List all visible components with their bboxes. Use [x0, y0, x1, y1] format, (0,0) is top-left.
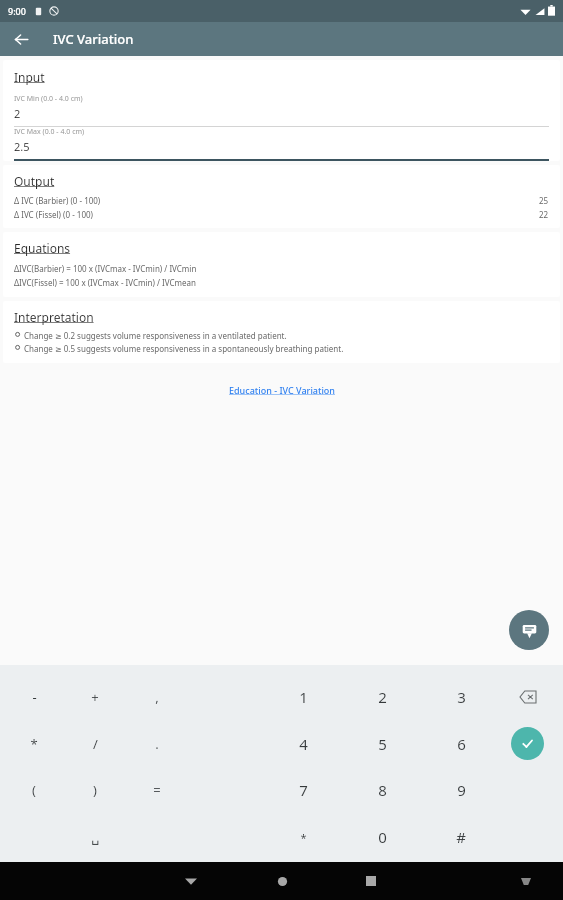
staticText: ΔIVC(Barbier) = 100 x (IVCmax - IVCmin) … [14, 263, 197, 274]
button[interactable]: ( [12, 774, 56, 806]
button[interactable]: Δ IVC (Fissel) (0 - 100) [3, 209, 560, 220]
staticText: IVC Max (0.0 - 4.0 cm) [14, 127, 85, 137]
button[interactable]: 6 [439, 728, 483, 760]
button[interactable]: 1 [281, 681, 325, 713]
button[interactable]: 9 [439, 774, 483, 806]
staticText: ΔIVC(Fissel) = 100 x (IVCmax - IVCmin) /… [14, 277, 196, 288]
button[interactable]: 3 [439, 681, 483, 713]
button[interactable]: / [73, 728, 117, 760]
staticText: IVC Variation [53, 30, 134, 48]
staticText: 8 [378, 780, 387, 800]
staticText: Output [14, 173, 55, 189]
button[interactable]: + [73, 681, 117, 713]
staticText: + [91, 688, 99, 706]
button[interactable]: * [12, 728, 56, 760]
button[interactable]: IVC Max (0.0 - 4.0 cm) [3, 127, 560, 161]
staticText: Equations [14, 240, 71, 256]
button[interactable]: , [135, 681, 179, 713]
button[interactable]: Done [511, 727, 544, 760]
staticText: 7 [299, 780, 308, 800]
staticText: ( [32, 781, 36, 799]
button[interactable]: . [135, 728, 179, 760]
button[interactable]: 7 [281, 774, 325, 806]
button[interactable]: 0 [360, 821, 404, 853]
staticText: - [32, 688, 37, 706]
staticText: 0 [378, 827, 387, 847]
button[interactable]: ) [73, 774, 117, 806]
button[interactable]: Send feedback [509, 610, 549, 650]
staticText: 2 [14, 106, 21, 121]
staticText: Change ≥ 0.2 suggests volume responsiven… [24, 330, 287, 341]
button[interactable]: Recent apps [356, 866, 386, 896]
staticText: ␣ [91, 830, 100, 845]
staticText: 2.5 [14, 139, 30, 154]
button[interactable]: Hide keyboard [513, 868, 539, 894]
button[interactable]: 8 [360, 774, 404, 806]
staticText: Interpretation [14, 309, 94, 325]
button[interactable]: 4 [281, 728, 325, 760]
staticText: 9 [457, 780, 466, 800]
staticText: , [155, 688, 159, 706]
staticText: / [93, 735, 98, 753]
button[interactable]: ␣ [73, 821, 117, 853]
staticText: ) [93, 781, 97, 799]
staticText: 4 [299, 734, 308, 754]
button[interactable]: Education - IVC Variation [0, 380, 563, 400]
staticText: Δ IVC (Fissel) (0 - 100) [14, 209, 93, 220]
staticText: Δ IVC (Barbier) (0 - 100) [14, 195, 101, 206]
button[interactable]: Backspace [508, 685, 548, 709]
button[interactable]: = [135, 774, 179, 806]
staticText: 3 [457, 687, 466, 707]
button[interactable]: 2 [360, 681, 404, 713]
staticText: 25 [539, 195, 549, 206]
button[interactable]: 5 [360, 728, 404, 760]
staticText: . [155, 735, 159, 753]
staticText: Input [14, 69, 45, 85]
staticText: Education - IVC Variation [229, 384, 335, 396]
button[interactable]: # [439, 821, 483, 853]
staticText: IVC Min (0.0 - 4.0 cm) [14, 94, 83, 104]
staticText: 22 [539, 209, 549, 220]
button[interactable]: Back [8, 26, 34, 52]
staticText: = [153, 781, 161, 799]
staticText: * [30, 735, 38, 753]
button[interactable]: * [281, 821, 325, 853]
staticText: 2 [378, 687, 387, 707]
staticText: Change ≥ 0.5 suggests volume responsiven… [24, 343, 344, 354]
staticText: * [300, 830, 307, 845]
button[interactable]: Δ IVC (Barbier) (0 - 100) [3, 195, 560, 206]
staticText: 6 [457, 734, 466, 754]
button[interactable]: - [12, 681, 56, 713]
staticText: 5 [378, 734, 387, 754]
staticText: 1 [299, 687, 308, 707]
staticText: 9:00 [8, 5, 26, 17]
button[interactable]: IVC Min (0.0 - 4.0 cm) [3, 94, 560, 127]
staticText: # [456, 827, 466, 847]
button[interactable]: Home [267, 866, 297, 896]
button[interactable]: Back [176, 866, 206, 896]
